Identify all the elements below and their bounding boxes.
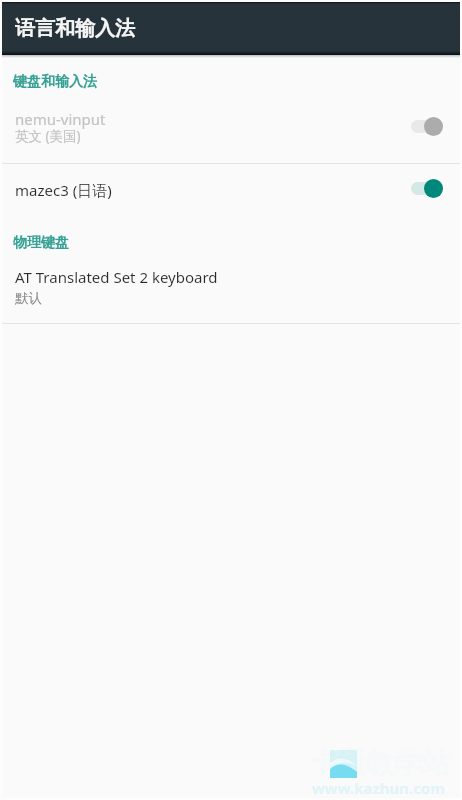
button[interactable]: AT Translated Set 2 keyboard xyxy=(2,258,460,323)
staticText: 英文 (美国) xyxy=(15,127,81,145)
button[interactable]: nemu-vinput xyxy=(2,100,460,163)
staticText: AT Translated Set 2 keyboard xyxy=(15,267,218,287)
button[interactable]: Toggle mazec3 Japanese keyboard xyxy=(411,178,443,199)
button[interactable]: mazec3 (日语) xyxy=(2,164,460,220)
staticText: 物理键盘 xyxy=(13,234,69,252)
staticText: 键盘和输入法 xyxy=(13,73,97,91)
staticText: nemu-vinput xyxy=(15,109,106,129)
button[interactable]: 语言和输入法 xyxy=(2,2,460,55)
staticText: mazec3 (日语) xyxy=(15,180,112,200)
staticText: 卡通教学站 xyxy=(310,746,450,781)
staticText: 语言和输入法 xyxy=(15,16,135,41)
staticText: www.kazhun.com xyxy=(312,778,446,798)
button[interactable]: Toggle nemu-vinput keyboard xyxy=(411,116,443,137)
staticText: 默认 xyxy=(15,290,42,307)
